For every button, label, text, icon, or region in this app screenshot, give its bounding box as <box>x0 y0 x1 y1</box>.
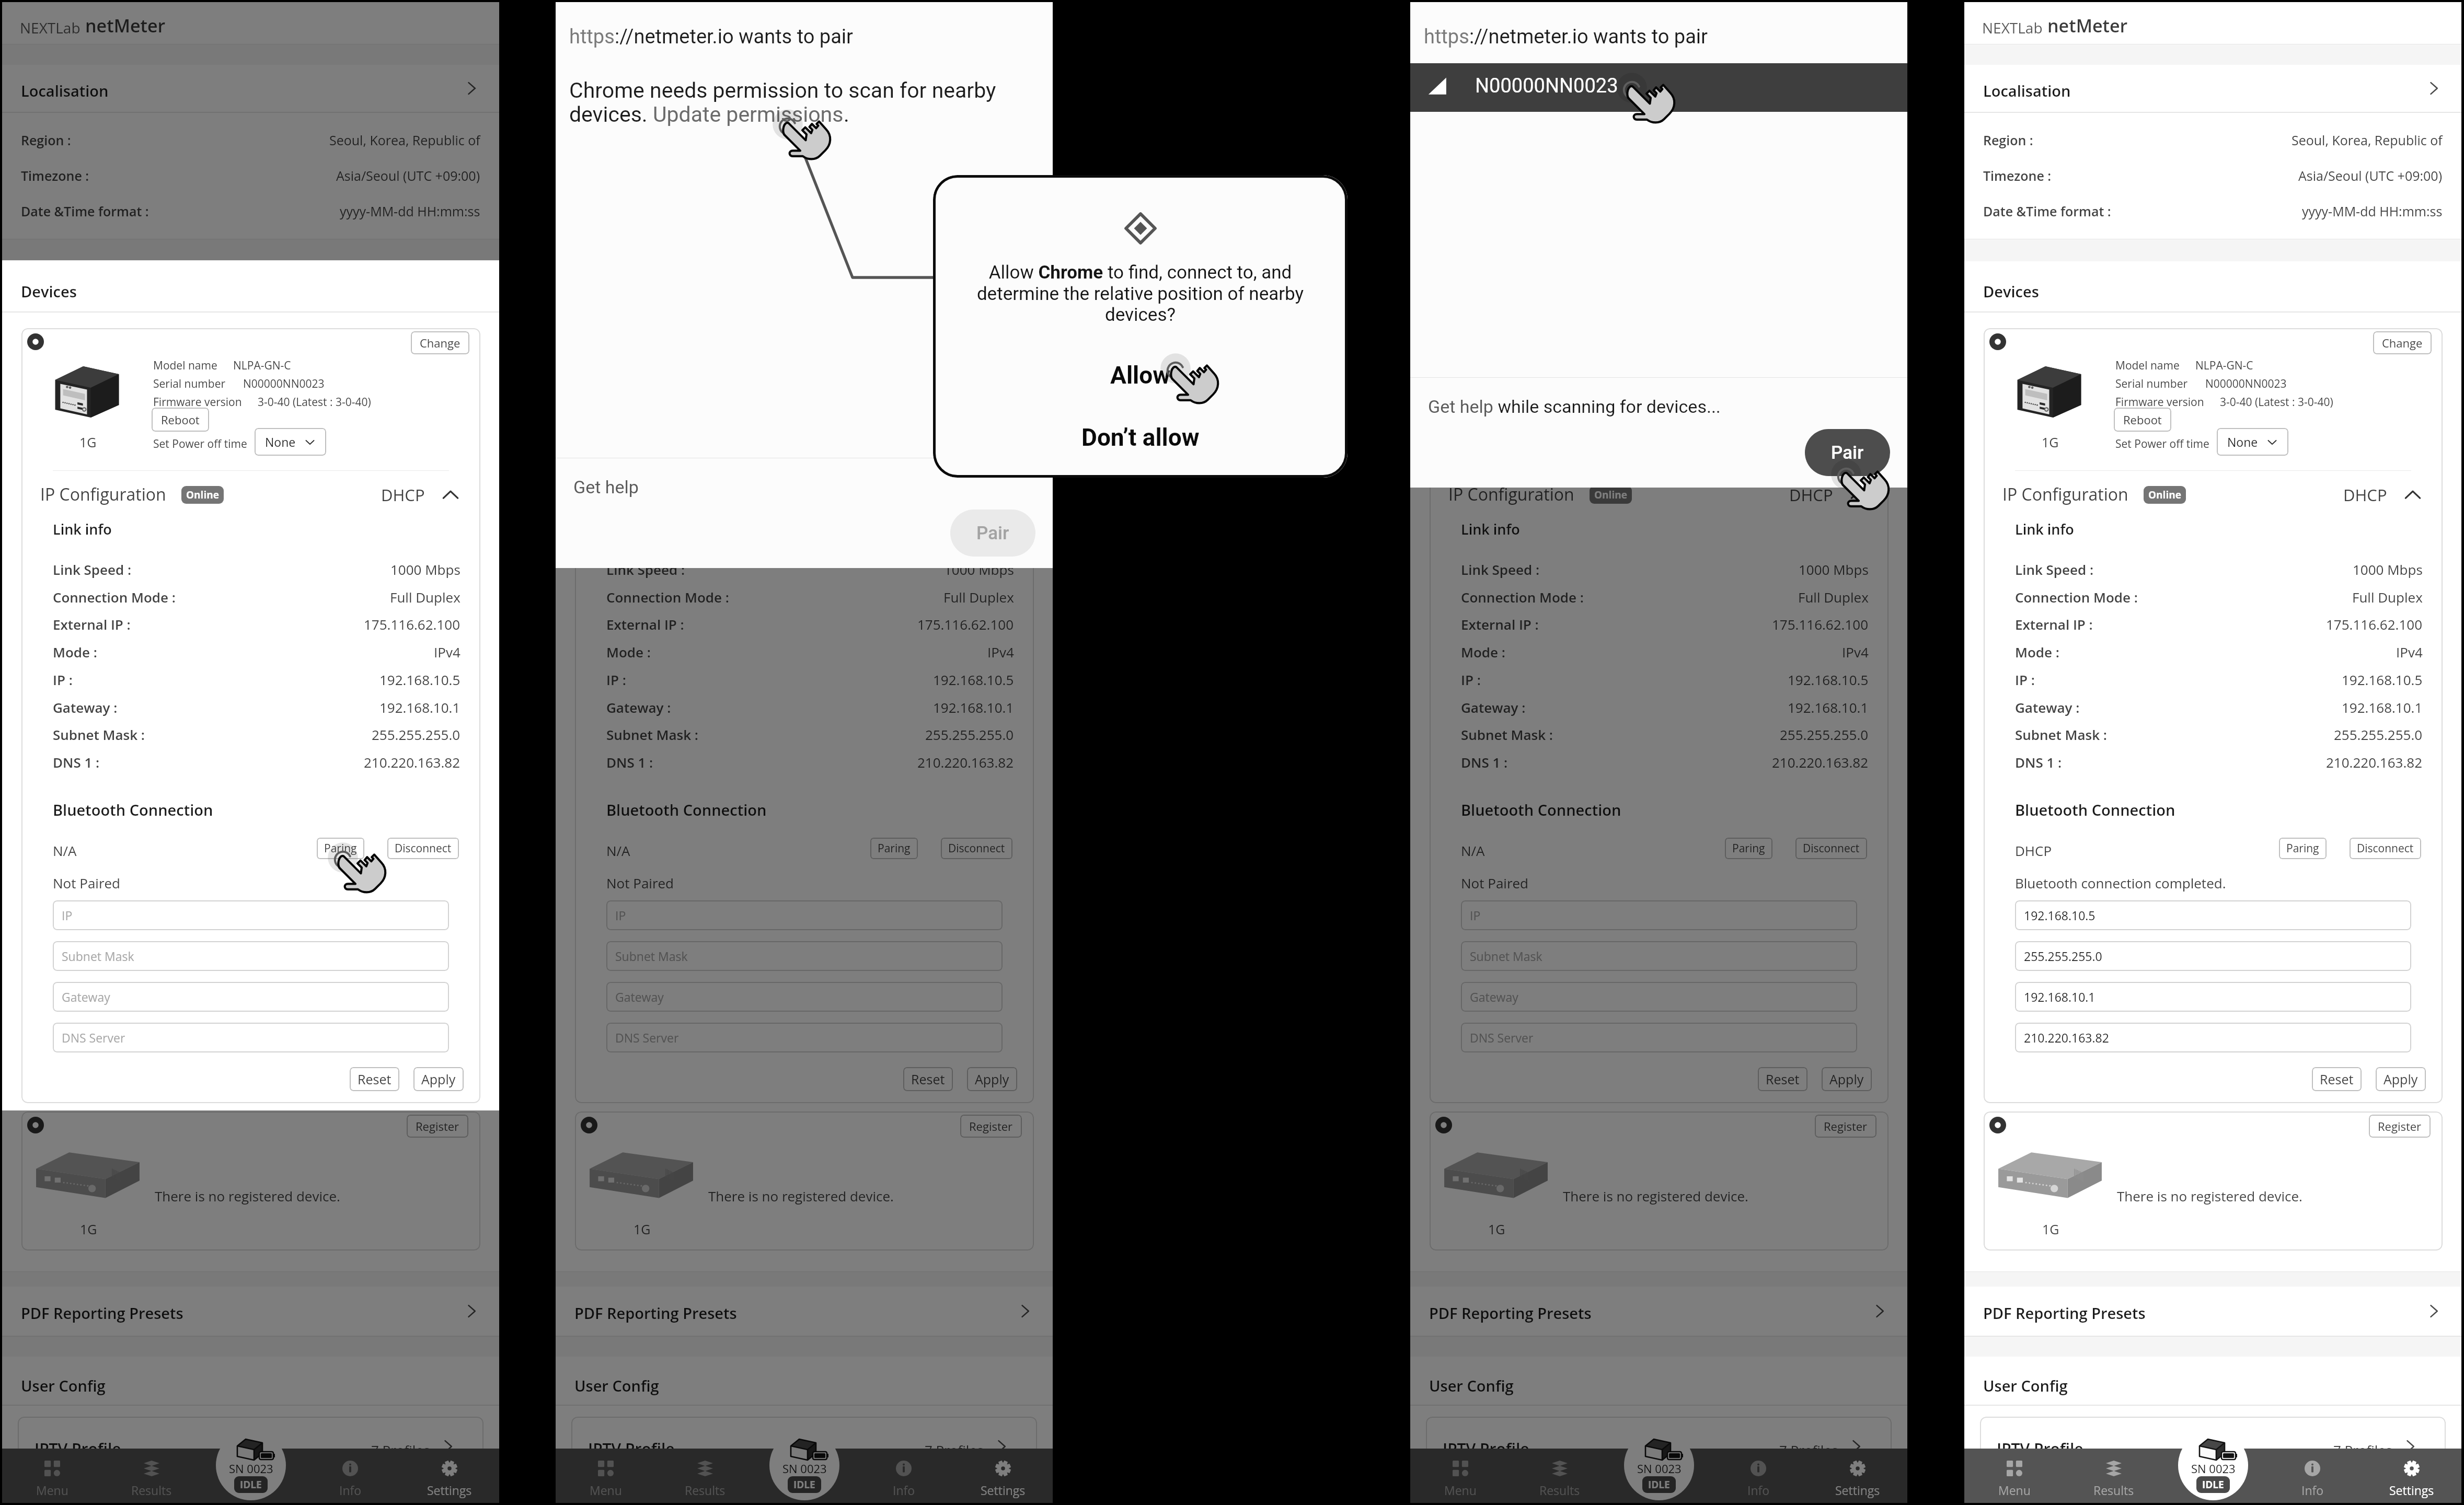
button[interactable]: Device SN 0023, status IDLE <box>769 1430 839 1500</box>
button[interactable]: Allow <box>1100 358 1181 392</box>
button[interactable]: Info <box>1709 1449 1808 1503</box>
button[interactable]: 255.255.255.0 <box>2015 941 2411 971</box>
button[interactable]: PDF Reporting Presets <box>1964 1287 2461 1336</box>
button[interactable]: Reboot <box>1560 408 1617 432</box>
button[interactable]: IP <box>53 900 449 930</box>
button[interactable]: Gateway <box>53 982 449 1012</box>
button[interactable]: Menu <box>1964 1449 2064 1503</box>
staticText: Connection Mode : <box>53 588 176 606</box>
button[interactable]: IPTV Profile <box>18 1417 483 1495</box>
button[interactable]: Paring <box>2279 838 2327 859</box>
button[interactable]: Device SN 0023, status IDLE <box>216 1430 286 1500</box>
button[interactable]: Reboot <box>2114 408 2171 432</box>
button[interactable]: Gateway <box>606 982 1003 1012</box>
button[interactable]: DNS Server <box>53 1023 449 1052</box>
button[interactable]: Results <box>2064 1449 2163 1503</box>
button[interactable]: Results <box>655 1449 755 1503</box>
button[interactable]: IPTV Profile <box>571 1417 1037 1495</box>
button[interactable]: Disconnect <box>941 838 1012 859</box>
button[interactable]: Reset <box>2312 1067 2362 1091</box>
button[interactable]: Subnet Mask <box>606 941 1003 971</box>
button[interactable]: Settings <box>953 1449 1053 1503</box>
staticText: 210.220.163.82 <box>2024 1029 2109 1046</box>
button[interactable]: Settings <box>1808 1449 1907 1503</box>
button[interactable]: None <box>255 428 326 456</box>
button[interactable]: Info <box>854 1449 953 1503</box>
button[interactable]: IP Configuration <box>575 480 1034 509</box>
button[interactable]: Disconnect <box>2350 838 2421 859</box>
button[interactable]: IP Configuration <box>1430 480 1889 509</box>
button[interactable]: Apply <box>1822 1067 1872 1091</box>
button[interactable]: DNS Server <box>606 1023 1003 1052</box>
button[interactable]: Results <box>102 1449 201 1503</box>
button[interactable]: Subnet Mask <box>1461 941 1857 971</box>
button[interactable]: Device SN 0023, status IDLE <box>2178 1430 2248 1500</box>
button[interactable]: Select this device <box>1989 333 2006 350</box>
button[interactable]: Select empty device slot <box>1435 1117 1452 1133</box>
button[interactable]: Select empty device slot <box>1989 1117 2006 1133</box>
button[interactable]: Change <box>411 331 469 354</box>
button[interactable]: Results <box>1510 1449 1609 1503</box>
button[interactable]: Change <box>2373 331 2432 354</box>
button[interactable]: None <box>2217 428 2288 456</box>
button[interactable]: Apply <box>967 1067 1017 1091</box>
button[interactable]: DNS Server <box>1461 1023 1857 1052</box>
button[interactable]: Register <box>1815 1115 1876 1138</box>
button[interactable]: Pair <box>1805 429 1890 476</box>
button[interactable]: Settings <box>2362 1449 2461 1503</box>
button[interactable]: Register <box>407 1115 468 1138</box>
button[interactable]: 192.168.10.1 <box>2015 982 2411 1012</box>
button[interactable]: N00000NN0023 <box>1410 63 1907 112</box>
button[interactable]: Reset <box>350 1067 399 1091</box>
staticText: 192.168.10.1 <box>379 698 460 716</box>
button[interactable]: Disconnect <box>387 838 459 859</box>
button[interactable]: Reset <box>903 1067 953 1091</box>
button[interactable]: Select this device <box>27 333 44 350</box>
button[interactable]: Apply <box>413 1067 464 1091</box>
button[interactable]: Paring <box>317 838 364 859</box>
button[interactable]: PDF Reporting Presets <box>556 1287 1053 1336</box>
button[interactable]: 210.220.163.82 <box>2015 1023 2411 1052</box>
button[interactable]: IP <box>606 900 1003 930</box>
button[interactable]: 192.168.10.5 <box>2015 900 2411 930</box>
button[interactable]: Localisation <box>556 65 1053 112</box>
button[interactable]: Menu <box>2 1449 102 1503</box>
button[interactable]: IPTV Profile <box>1980 1417 2446 1495</box>
button[interactable]: Subnet Mask <box>53 941 449 971</box>
button[interactable]: IP <box>1461 900 1857 930</box>
button[interactable]: Device SN 0023, status IDLE <box>1624 1430 1694 1500</box>
button[interactable]: Disconnect <box>1795 838 1867 859</box>
button[interactable]: Select empty device slot <box>27 1117 44 1133</box>
button[interactable]: Register <box>960 1115 1022 1138</box>
button[interactable]: Pair <box>950 510 1035 557</box>
button[interactable]: IP Configuration <box>1984 480 2443 509</box>
button[interactable]: Localisation <box>1964 65 2461 112</box>
button[interactable]: Settings <box>400 1449 499 1503</box>
button[interactable]: Menu <box>1410 1449 1510 1503</box>
button[interactable]: Select empty device slot <box>581 1117 597 1133</box>
button[interactable]: Paring <box>1725 838 1772 859</box>
button[interactable]: Localisation <box>2 65 499 112</box>
button[interactable]: PDF Reporting Presets <box>1410 1287 1907 1336</box>
button[interactable]: Info <box>301 1449 400 1503</box>
button[interactable]: IP Configuration <box>21 480 480 509</box>
button[interactable]: Paring <box>870 838 918 859</box>
button[interactable]: IPTV Profile <box>1426 1417 1892 1495</box>
button[interactable]: Menu <box>556 1449 655 1503</box>
button[interactable]: Info <box>2263 1449 2362 1503</box>
button[interactable]: Reset <box>1758 1067 1807 1091</box>
button[interactable]: Apply <box>2376 1067 2426 1091</box>
button[interactable]: Gateway <box>1461 982 1857 1012</box>
button[interactable]: Register <box>2369 1115 2431 1138</box>
button[interactable]: Localisation <box>1410 65 1907 112</box>
button[interactable]: Reboot <box>152 408 209 432</box>
button[interactable]: Don’t allow <box>1071 420 1210 455</box>
button[interactable]: PDF Reporting Presets <box>2 1287 499 1336</box>
